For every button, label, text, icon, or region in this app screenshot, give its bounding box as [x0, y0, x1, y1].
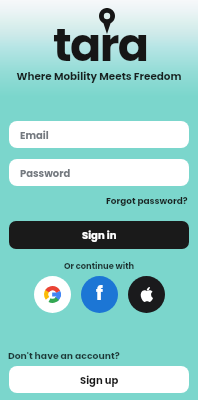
- button[interactable]: Forgot password?: [104, 194, 190, 208]
- staticText: Email: [20, 128, 49, 142]
- staticText: Forgot password?: [106, 195, 188, 207]
- staticText: Password: [20, 166, 71, 180]
- button[interactable]: Sign in: [9, 221, 189, 249]
- staticText: Where Mobility Meets Freedom: [0, 69, 198, 84]
- button[interactable]: Sign up: [9, 366, 189, 393]
- button[interactable]: Sign in with Apple: [128, 276, 165, 313]
- button[interactable]: Sign in with Google: [34, 276, 71, 313]
- button[interactable]: Email: [9, 121, 189, 148]
- staticText: tara: [53, 13, 148, 63]
- button[interactable]: Password: [9, 159, 189, 186]
- staticText: Sign in: [82, 228, 117, 242]
- staticText: Don't have an account?: [8, 349, 198, 362]
- staticText: Or continue with: [0, 260, 198, 272]
- staticText: f: [96, 280, 103, 307]
- staticText: Sign up: [80, 373, 119, 387]
- button[interactable]: Sign in with Facebook: [81, 276, 118, 313]
